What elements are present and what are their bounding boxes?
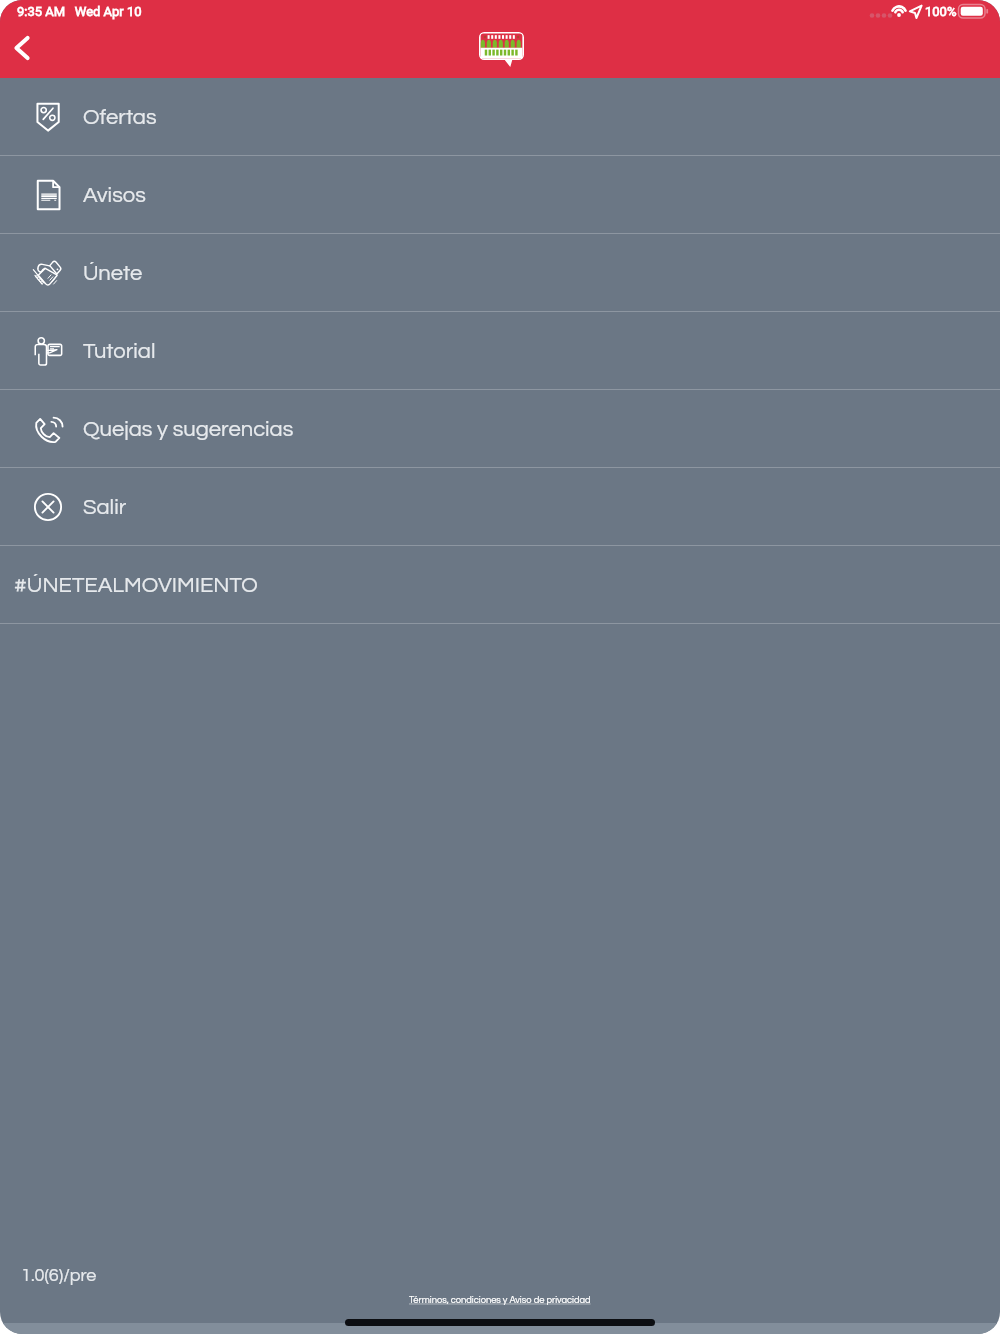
- button[interactable]: Quejas y sugerencias: [0, 390, 1000, 468]
- staticText: Salir: [83, 496, 127, 519]
- staticText: Términos, condiciones y Aviso de privaci…: [409, 1295, 591, 1305]
- button[interactable]: Back: [0, 25, 45, 71]
- staticText: Avisos: [83, 184, 146, 207]
- staticText: 1.0(6)/pre: [21, 1266, 97, 1285]
- button[interactable]: Avisos: [0, 156, 1000, 234]
- button[interactable]: Tutorial: [0, 312, 1000, 390]
- button[interactable]: Únete: [0, 234, 1000, 312]
- staticText: #ÚNETEALMOVIMIENTO: [14, 574, 258, 597]
- staticText: Únete: [83, 262, 143, 285]
- staticText: Quejas y sugerencias: [83, 418, 294, 441]
- staticText: Ofertas: [83, 106, 157, 129]
- staticText: 9:35 AM Wed Apr 10: [17, 4, 142, 19]
- staticText: Tutorial: [83, 340, 156, 363]
- button[interactable]: Salir: [0, 468, 1000, 546]
- staticText: 100%: [925, 4, 957, 19]
- button[interactable]: Términos, condiciones y Aviso de privaci…: [409, 1295, 591, 1305]
- button[interactable]: Ofertas: [0, 78, 1000, 156]
